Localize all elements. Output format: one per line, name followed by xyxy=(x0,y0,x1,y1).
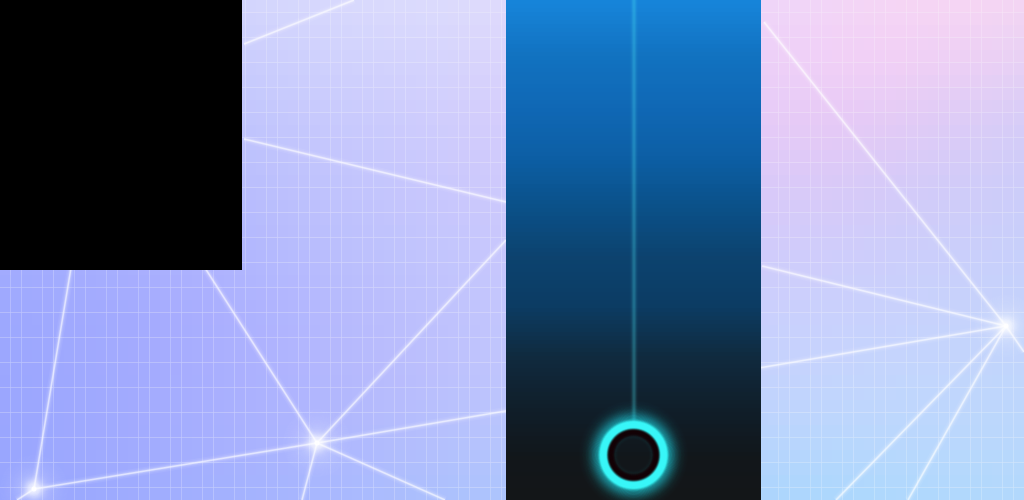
button[interactable]: Beacon xyxy=(568,390,698,500)
